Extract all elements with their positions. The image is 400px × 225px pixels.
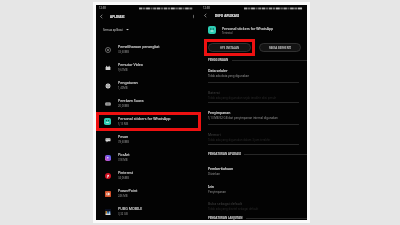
button[interactable]: Perekam Suara — [96, 94, 200, 112]
staticText: Semua aplikasi — [103, 28, 123, 32]
button[interactable]: Pemeliharaan perangkat — [96, 40, 200, 58]
button[interactable]: More options — [189, 12, 198, 21]
button[interactable]: Penyimpanan — [208, 110, 307, 120]
staticText: Buka sebagai default — [208, 201, 243, 206]
staticText: PENGATURAN APLIKASI — [208, 152, 241, 156]
staticText: APLIKASI — [110, 15, 125, 19]
button[interactable]: PAKSA BERHENTI — [259, 43, 301, 52]
staticText: Memori — [208, 132, 221, 137]
staticText: Pesan — [118, 134, 129, 139]
button[interactable]: PUBG MOBILE — [96, 202, 200, 220]
button[interactable]: Memori — [208, 132, 307, 142]
staticText: 12:38 — [203, 6, 210, 10]
staticText: Perekam Suara — [118, 98, 144, 103]
staticText: Tidak ada yang digunakan sejak terakhir … — [208, 96, 277, 100]
staticText: INFO APLIKASI — [215, 14, 240, 18]
button[interactable]: Pesan — [96, 130, 200, 148]
staticText: Personal stickers for WhatsApp — [118, 116, 171, 121]
staticText: 3,32 GB — [118, 212, 128, 216]
staticText: Tidak ada yang digunakan dalam 3 jam ter… — [208, 138, 271, 142]
button[interactable]: Personal stickers for WhatsApp — [96, 112, 200, 130]
staticText: 12:38 — [99, 6, 106, 10]
staticText: Terinstal — [222, 31, 233, 35]
staticText: 246 MB — [118, 194, 128, 198]
staticText: Pinterest — [118, 170, 134, 175]
staticText: Pengaturan — [118, 80, 138, 85]
staticText: Pemeliharaan perangkat — [118, 44, 160, 49]
staticText: 5,13 MB — [118, 122, 129, 126]
staticText: Tidak ada data yang digunakan — [208, 74, 250, 78]
button[interactable]: Back — [200, 11, 210, 20]
staticText: 9,61MB — [118, 68, 128, 72]
button[interactable]: Back — [96, 12, 106, 21]
button[interactable]: HPS INSTALAN — [208, 43, 251, 52]
staticText: 78,60MB — [118, 140, 130, 144]
staticText: 1,40MB — [118, 86, 128, 90]
staticText: Baterai — [208, 90, 220, 95]
button[interactable]: PowerPoint — [96, 184, 200, 202]
staticText: PENGATURAN LANJUTAN — [208, 216, 243, 220]
staticText: Pemutar Video — [118, 62, 144, 67]
staticText: PowerPoint — [118, 188, 138, 193]
button[interactable]: Pinterest — [96, 166, 200, 184]
staticText: Penyimpanan — [208, 190, 227, 194]
staticText: 20,00MB — [118, 104, 130, 108]
button[interactable]: Buka sebagai default — [208, 201, 307, 211]
staticText: Diizinkan — [208, 172, 221, 176]
staticText: Tidak ada yang disetel sebagai default — [208, 207, 259, 211]
button[interactable]: Semua aplikasi — [103, 25, 129, 34]
staticText: HPS INSTALAN — [220, 46, 239, 50]
staticText: PAKSA BERHENTI — [269, 46, 292, 50]
staticText: 5,13 MB/32 GB dari penyimpanan internal … — [208, 116, 278, 120]
staticText: 34,06MB — [118, 176, 130, 180]
staticText: 33,60MB — [118, 50, 130, 54]
button[interactable]: Pemutar Video — [96, 58, 200, 76]
button[interactable]: Pemberitahuan — [208, 166, 307, 176]
staticText: Data seluler — [208, 68, 228, 73]
staticText: Personal stickers for WhatsApp — [222, 26, 274, 31]
button[interactable]: Izin — [208, 184, 307, 194]
staticText: Pemberitahuan — [208, 166, 234, 171]
button[interactable]: PicsArt — [96, 148, 200, 166]
staticText: 318 MB — [118, 158, 128, 162]
button[interactable]: Data seluler — [208, 68, 307, 78]
staticText: Izin — [208, 184, 214, 189]
staticText: Penyimpanan — [208, 110, 231, 115]
button[interactable]: Baterai — [208, 90, 307, 100]
staticText: PUBG MOBILE — [118, 206, 143, 211]
staticText: PENGGUNAAN — [208, 58, 229, 62]
staticText: PicsArt — [118, 152, 130, 157]
button[interactable]: Pengaturan — [96, 76, 200, 94]
